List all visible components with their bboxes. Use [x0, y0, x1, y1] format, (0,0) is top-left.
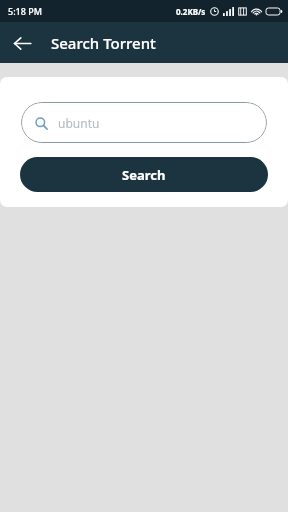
button[interactable]: Search: [20, 157, 268, 192]
staticText: 5:18 PM: [8, 5, 42, 17]
staticText: Search: [122, 166, 166, 184]
button[interactable]: Back: [4, 25, 40, 61]
staticText: ubuntu: [58, 115, 100, 131]
staticText: 0.2KB/s: [176, 6, 206, 17]
button[interactable]: ubuntu: [21, 102, 267, 143]
staticText: Search Torrent: [51, 33, 156, 53]
